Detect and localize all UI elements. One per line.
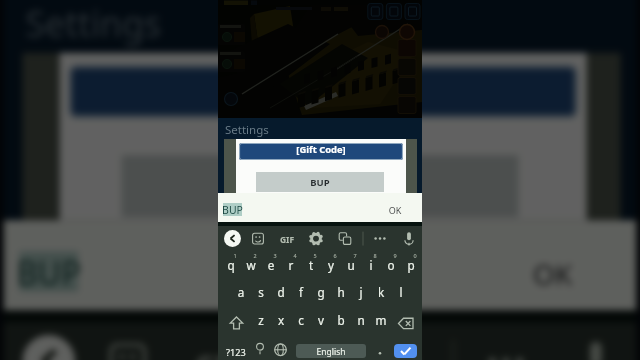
staticText: v [313,312,329,328]
staticText: 8 [371,252,379,259]
button[interactable]: Stickers [248,228,270,250]
staticText: a [233,284,249,300]
staticText: [Gift Code] [239,143,403,156]
staticText: 2 [251,252,259,259]
staticText: GIF [276,234,298,246]
staticText: s [253,284,269,300]
button[interactable]: BUP [122,155,518,217]
staticText: Settings [225,122,269,138]
staticText: English [296,346,366,358]
staticText: t [303,257,319,273]
staticText: g [313,284,329,300]
staticText: y [323,257,339,273]
staticText: l [393,284,409,300]
button[interactable]: Enter [394,344,417,358]
staticText: 1 [231,252,239,259]
staticText: Settings [25,0,162,50]
staticText: OK [518,254,587,292]
staticText: 6 [331,252,339,259]
staticText: u [343,257,359,273]
staticText: [Gift Code] [69,65,577,106]
staticText: 3 [271,252,279,259]
staticText: BUP [122,168,518,208]
staticText: 4 [291,252,299,259]
button[interactable]: OK [518,245,587,292]
staticText: i [363,257,379,273]
staticText: 5 [311,252,319,259]
staticText: BUP [16,251,81,295]
staticText: x [273,312,289,328]
staticText: 7 [351,252,359,259]
button[interactable]: Back [224,230,241,247]
staticText: n [353,312,369,328]
staticText: BUP [222,203,243,217]
button[interactable]: ?123 [222,343,250,359]
staticText: BUP [256,176,384,189]
staticText: h [333,284,349,300]
staticText: f [293,284,309,300]
staticText: GIF [184,347,252,360]
staticText: d [273,284,289,300]
staticText: 9 [391,252,399,259]
button[interactable]: [Gift Code] [239,143,403,160]
button[interactable]: OK [384,201,406,216]
staticText: p [403,257,419,273]
staticText: j [353,284,369,300]
staticText: k [373,284,389,300]
button[interactable]: English [296,344,366,358]
staticText: m [373,312,389,328]
staticText: z [253,312,269,328]
staticText: b [333,312,349,328]
button[interactable]: BUP [256,172,384,192]
staticText: q [223,257,239,273]
staticText: o [383,257,399,273]
staticText: w [243,257,259,273]
button[interactable]: GIF [276,230,298,248]
staticText: 0 [411,252,419,259]
button[interactable]: [Gift Code] [69,65,577,118]
staticText: c [293,312,309,328]
button[interactable]: Back [22,335,75,360]
staticText: e [263,257,279,273]
staticText: OK [384,204,406,216]
button[interactable]: GIF [184,335,252,360]
staticText: ?123 [222,346,250,359]
button[interactable]: Stickers [97,329,165,360]
staticText: r [283,257,299,273]
